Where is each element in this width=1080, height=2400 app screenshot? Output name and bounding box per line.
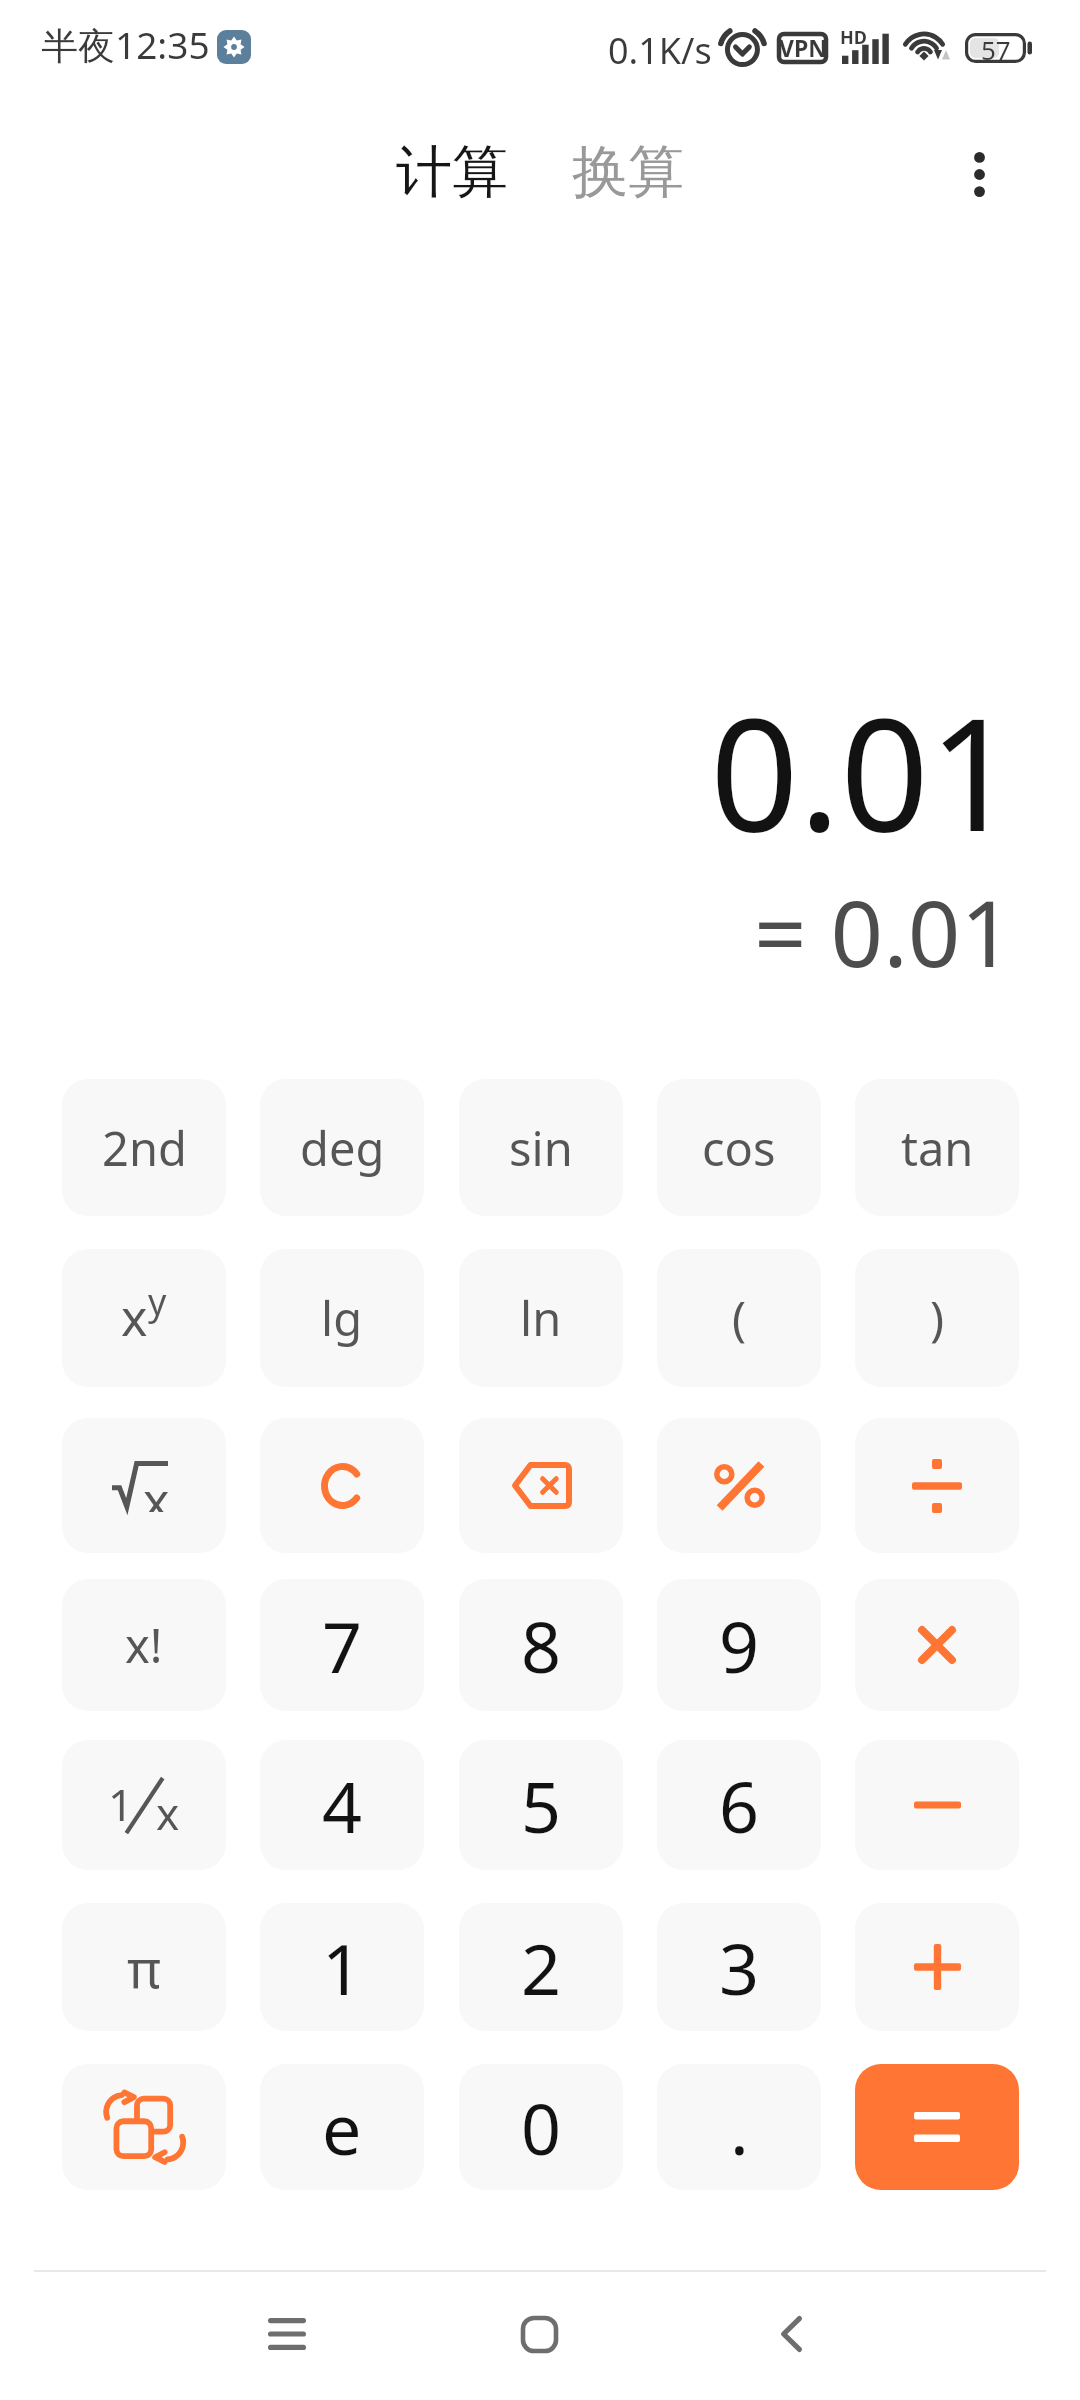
staticText: lg xyxy=(321,1286,363,1350)
button[interactable] xyxy=(855,1903,1019,2031)
staticText: 0.01 xyxy=(710,665,1018,876)
button[interactable] xyxy=(855,2064,1019,2190)
staticText: 1 xyxy=(322,1920,363,2015)
staticText: . xyxy=(730,2080,749,2175)
button[interactable]: x xyxy=(62,1249,226,1387)
button[interactable]: ) xyxy=(855,1249,1019,1387)
button[interactable]: 1 xyxy=(62,1740,226,1870)
button[interactable]: 7 xyxy=(260,1579,424,1711)
button[interactable]: x! xyxy=(62,1579,226,1711)
staticText: ) xyxy=(930,1286,945,1350)
button[interactable]: 3 xyxy=(657,1903,821,2031)
staticText: 换算 xyxy=(572,137,684,208)
staticText: ln xyxy=(520,1286,562,1350)
button[interactable]: sin xyxy=(459,1079,623,1216)
staticText: tan xyxy=(901,1116,974,1180)
staticText: VPN xyxy=(779,32,827,63)
staticText: HD xyxy=(840,25,867,50)
staticText: 4 xyxy=(322,1758,363,1853)
button[interactable]: ln xyxy=(459,1249,623,1387)
button[interactable]: ( xyxy=(657,1249,821,1387)
staticText: x xyxy=(156,1783,180,1837)
staticText: deg xyxy=(300,1116,385,1180)
button[interactable]: π xyxy=(62,1903,226,2031)
button[interactable]: x xyxy=(62,1418,226,1553)
button[interactable]: tan xyxy=(855,1079,1019,1216)
button[interactable]: Back xyxy=(731,2274,851,2394)
staticText: 3 xyxy=(719,1920,760,2015)
button[interactable] xyxy=(260,1418,424,1553)
staticText: 计算 xyxy=(396,137,508,208)
button[interactable]: Home xyxy=(479,2274,599,2394)
staticText: 半夜12:35 xyxy=(41,19,210,70)
staticText: 8 xyxy=(521,1598,562,1693)
button[interactable]: 2nd xyxy=(62,1079,226,1216)
staticText: 9 xyxy=(719,1598,760,1693)
staticText: π xyxy=(127,1932,161,2003)
button[interactable]: cos xyxy=(657,1079,821,1216)
button[interactable]: 0 xyxy=(459,2064,623,2190)
button[interactable]: 6 xyxy=(657,1740,821,1870)
button[interactable]: . xyxy=(657,2064,821,2190)
staticText: sin xyxy=(509,1116,573,1180)
button[interactable] xyxy=(657,1418,821,1553)
staticText: x xyxy=(143,1466,170,1512)
staticText: 57 xyxy=(981,32,1011,62)
staticText: ( xyxy=(732,1286,747,1350)
button[interactable]: lg xyxy=(260,1249,424,1387)
staticText: cos xyxy=(702,1116,776,1180)
button[interactable]: Recents xyxy=(227,2274,347,2394)
button[interactable]: 9 xyxy=(657,1579,821,1711)
staticText: 2nd xyxy=(102,1116,187,1180)
button[interactable]: 8 xyxy=(459,1579,623,1711)
staticText: y xyxy=(148,1277,167,1326)
staticText: 5 xyxy=(521,1758,562,1853)
button[interactable]: 1 xyxy=(260,1903,424,2031)
button[interactable]: 计算 xyxy=(384,123,520,222)
button[interactable] xyxy=(459,1418,623,1553)
button[interactable]: 5 xyxy=(459,1740,623,1870)
button[interactable]: 4 xyxy=(260,1740,424,1870)
button[interactable] xyxy=(855,1418,1019,1553)
staticText: = 0.01 xyxy=(754,869,1014,994)
staticText: 6 xyxy=(719,1758,760,1853)
button[interactable] xyxy=(62,2064,226,2190)
staticText: 0 xyxy=(521,2080,562,2175)
button[interactable]: deg xyxy=(260,1079,424,1216)
button[interactable]: e xyxy=(260,2064,424,2190)
staticText: e xyxy=(322,2080,362,2175)
staticText: x xyxy=(121,1283,148,1339)
staticText: 2 xyxy=(521,1920,562,2015)
button[interactable] xyxy=(855,1740,1019,1870)
button[interactable]: 2 xyxy=(459,1903,623,2031)
button[interactable]: More options xyxy=(929,124,1029,224)
staticText: x! xyxy=(125,1613,163,1677)
button[interactable]: 换算 xyxy=(560,123,696,222)
button[interactable] xyxy=(855,1579,1019,1711)
staticText: 0.1K/s xyxy=(608,26,712,75)
staticText: 7 xyxy=(322,1598,363,1693)
staticText: 1 xyxy=(108,1774,134,1828)
